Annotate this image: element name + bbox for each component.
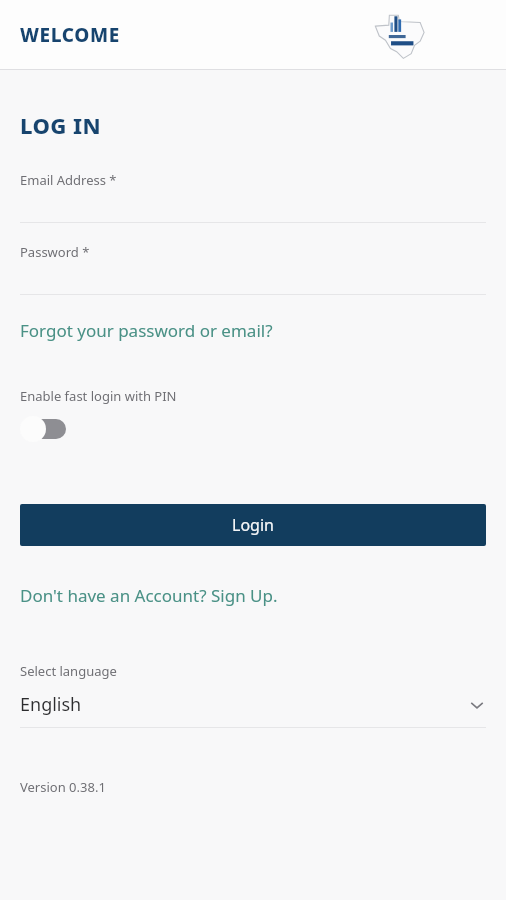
staticText: Email Address * [20, 171, 117, 189]
staticText: LOG IN [20, 110, 101, 140]
button[interactable]: Email Address * [0, 171, 506, 223]
button[interactable]: Login [20, 504, 486, 546]
staticText: Select language [20, 662, 117, 680]
button[interactable]: Don't have an Account? Sign Up. [20, 584, 278, 607]
button[interactable]: Forgot your password or email? [20, 319, 273, 342]
other: Expand language list [468, 696, 486, 714]
staticText: Don't have an Account? Sign Up. [20, 584, 278, 607]
staticText: WELCOME [20, 22, 120, 48]
staticText: Enable fast login with PIN [20, 387, 177, 405]
other: Logo [372, 9, 428, 61]
staticText: Password * [20, 243, 90, 261]
button[interactable]: Enable fast login with PIN [0, 387, 506, 443]
staticText: Forgot your password or email? [20, 319, 273, 342]
button[interactable]: Select language [0, 662, 506, 728]
staticText: English [20, 692, 82, 717]
other: Enable fast login with PIN toggle [20, 415, 68, 443]
staticText: Version 0.38.1 [20, 778, 106, 796]
button[interactable]: Password * [0, 243, 506, 295]
staticText: Login [232, 514, 274, 536]
